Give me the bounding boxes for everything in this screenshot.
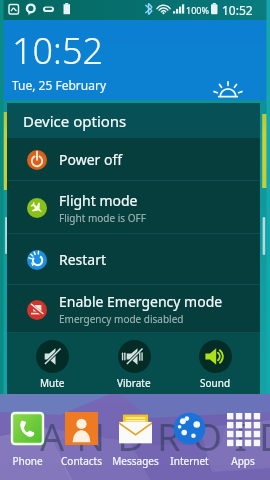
staticText: Contacts bbox=[61, 454, 102, 468]
button[interactable]: Sound bbox=[179, 333, 251, 394]
button[interactable]: Restart bbox=[7, 234, 260, 285]
button[interactable]: Vibrate bbox=[98, 333, 170, 394]
staticText: Device options bbox=[23, 111, 127, 131]
staticText: Enable Emergency mode bbox=[59, 292, 223, 311]
button[interactable]: Mute bbox=[16, 333, 88, 394]
button[interactable]: Flight mode bbox=[7, 181, 260, 234]
staticText: Flight mode is OFF bbox=[59, 211, 146, 225]
staticText: Mute bbox=[40, 376, 65, 390]
button[interactable]: Phone bbox=[0, 394, 54, 480]
button[interactable]: Power off bbox=[7, 138, 260, 181]
staticText: Emergency mode disabled bbox=[59, 312, 184, 326]
staticText: Vibrate bbox=[117, 376, 151, 390]
staticText: Tue, 25 February bbox=[12, 77, 106, 93]
staticText: Sound bbox=[200, 376, 231, 390]
button[interactable]: Internet bbox=[162, 394, 216, 480]
staticText: Phone bbox=[12, 454, 43, 468]
staticText: 100% bbox=[186, 4, 209, 16]
staticText: Flight mode bbox=[59, 191, 138, 210]
staticText: Restart bbox=[59, 250, 107, 269]
staticText: ANDROID bbox=[40, 410, 270, 462]
staticText: Apps bbox=[231, 454, 255, 468]
button[interactable]: Apps bbox=[216, 394, 270, 480]
staticText: Messages bbox=[112, 454, 159, 468]
staticText: 10:52 bbox=[222, 2, 253, 18]
staticText: Power off bbox=[59, 150, 123, 169]
staticText: Internet bbox=[170, 454, 209, 468]
button[interactable]: Messages bbox=[108, 394, 162, 480]
button[interactable]: Contacts bbox=[54, 394, 108, 480]
button[interactable]: Enable Emergency mode bbox=[7, 285, 260, 333]
staticText: 10:52 bbox=[12, 26, 104, 75]
